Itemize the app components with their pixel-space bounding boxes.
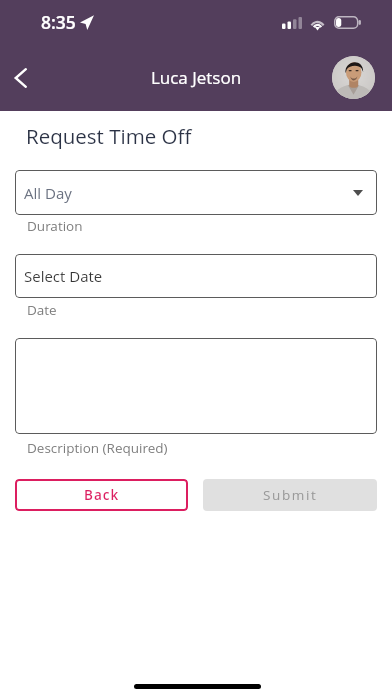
staticText: Duration xyxy=(27,217,83,235)
staticText: Select Date xyxy=(24,266,103,286)
staticText: All Day xyxy=(24,183,72,203)
button[interactable]: Back xyxy=(0,57,42,99)
button[interactable]: Submit xyxy=(203,479,377,511)
staticText: Submit xyxy=(263,486,318,504)
button[interactable]: All Day xyxy=(15,170,377,215)
button[interactable] xyxy=(15,338,377,434)
staticText: Back xyxy=(84,486,120,504)
staticText: Description (Required) xyxy=(27,439,168,457)
staticText: Request Time Off xyxy=(26,122,192,150)
button[interactable]: Profile xyxy=(332,56,375,99)
staticText: 8:35 xyxy=(41,10,76,34)
staticText: Luca Jetson xyxy=(151,66,242,89)
staticText: Date xyxy=(27,301,57,319)
button[interactable]: Back xyxy=(15,479,188,511)
button[interactable]: Select Date xyxy=(15,254,377,298)
